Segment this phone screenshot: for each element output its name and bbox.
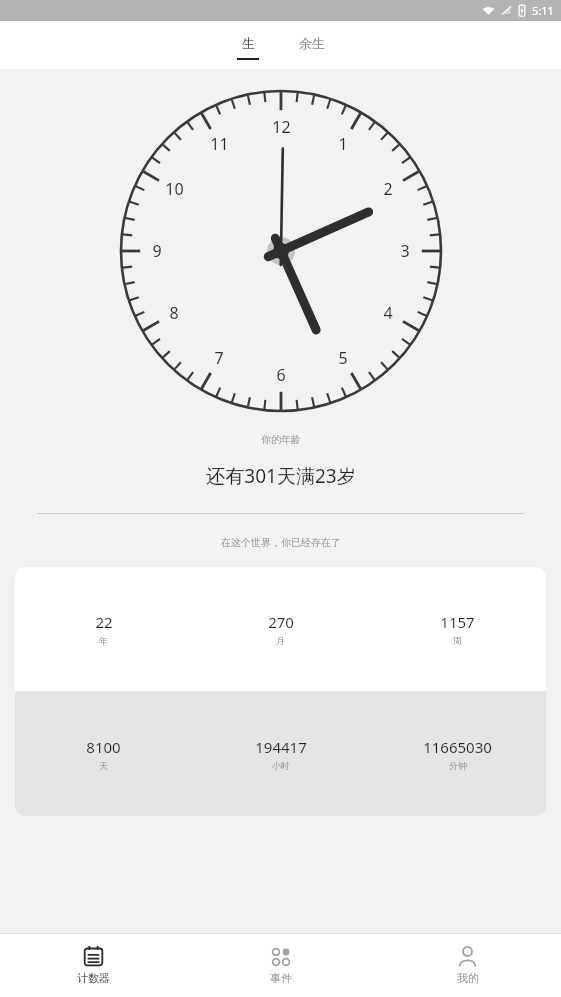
staticText: 在这个世界，你已经存在了	[221, 536, 341, 549]
staticText: 7	[214, 347, 224, 369]
staticText: 2	[383, 178, 393, 200]
staticText: 8	[169, 302, 179, 324]
staticText: 生	[242, 35, 255, 51]
staticText: 11665030	[423, 737, 492, 757]
staticText: 5	[338, 347, 348, 369]
staticText: 你的年龄	[261, 433, 301, 446]
staticText: 1157	[440, 612, 475, 632]
staticText: 22	[95, 612, 113, 632]
staticText: 计数器	[77, 971, 110, 985]
staticText: 5:11	[532, 3, 554, 18]
staticText: 8100	[86, 737, 121, 757]
staticText: 事件	[270, 971, 292, 985]
staticText: 3	[400, 240, 410, 262]
staticText: 天	[99, 760, 108, 771]
staticText: 年	[99, 635, 108, 646]
staticText: 小时	[272, 760, 290, 771]
staticText: 6	[276, 364, 286, 386]
staticText: 月	[276, 635, 285, 646]
button[interactable]: 22	[15, 567, 546, 816]
staticText: 分钟	[449, 760, 467, 771]
button[interactable]: 生	[225, 33, 271, 62]
staticText: 9	[152, 240, 162, 262]
staticText: 270	[268, 612, 294, 632]
staticText: 1	[338, 133, 348, 155]
button[interactable]: 计数器	[0, 934, 187, 997]
staticText: 我的	[457, 971, 479, 985]
staticText: 4	[383, 302, 393, 324]
staticText: 还有301天满23岁	[206, 463, 356, 489]
staticText: 11	[210, 133, 229, 155]
button[interactable]: 余生	[287, 33, 337, 62]
button[interactable]: 我的	[374, 934, 561, 997]
staticText: 10	[165, 178, 184, 200]
button[interactable]: 事件	[187, 934, 374, 997]
staticText: 194417	[255, 737, 307, 757]
staticText: 余生	[299, 35, 325, 51]
staticText: 周	[453, 635, 462, 646]
staticText: 12	[272, 116, 291, 138]
